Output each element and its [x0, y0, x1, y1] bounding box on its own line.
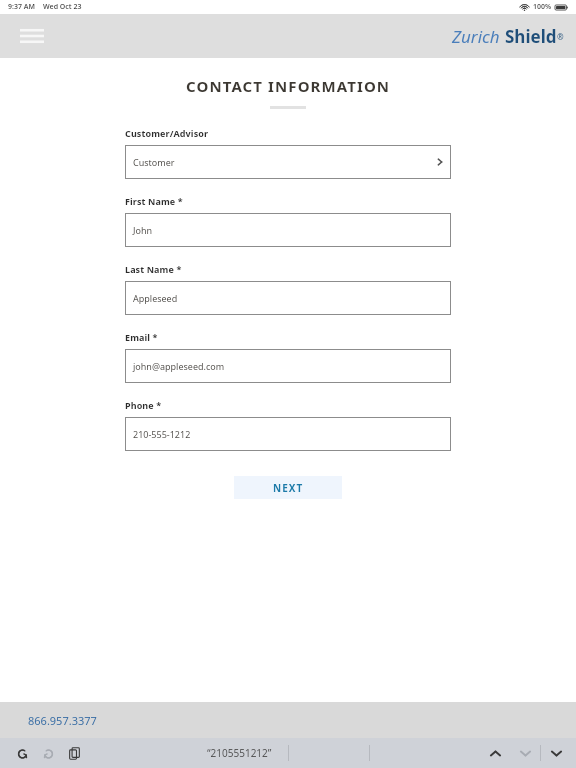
staticText: CONTACT INFORMATION: [186, 76, 391, 96]
staticText: 100%: [533, 2, 552, 12]
staticText: NEXT: [273, 481, 304, 495]
button[interactable]: Menu: [14, 18, 50, 54]
button[interactable]: Paste: [62, 741, 86, 765]
staticText: Customer/Advisor: [125, 127, 209, 139]
staticText: First Name *: [125, 195, 183, 207]
staticText: john@appleseed.com: [133, 360, 225, 372]
button[interactable]: 866.957.3377: [28, 713, 97, 728]
staticText: Last Name *: [125, 263, 182, 275]
button[interactable]: Redo: [36, 741, 60, 765]
staticText: Phone *: [125, 399, 162, 411]
button[interactable]: “2105551212”: [207, 746, 272, 760]
button[interactable]: 210-555-1212: [125, 417, 451, 451]
button[interactable]: Customer: [125, 145, 451, 179]
staticText: Zurich: [452, 25, 500, 48]
button[interactable]: Previous field: [483, 741, 507, 765]
staticText: 9:37 AM: [8, 2, 35, 12]
button[interactable]: Undo: [10, 741, 34, 765]
button[interactable]: john@appleseed.com: [125, 349, 451, 383]
staticText: John: [133, 224, 153, 236]
staticText: “2105551212”: [207, 746, 272, 760]
staticText: Wed Oct 23: [43, 2, 82, 12]
button[interactable]: Next field: [513, 741, 537, 765]
staticText: 866.957.3377: [28, 713, 97, 728]
staticText: Email *: [125, 331, 158, 343]
staticText: ®: [557, 31, 564, 42]
button[interactable]: Appleseed: [125, 281, 451, 315]
button[interactable]: NEXT: [234, 476, 342, 499]
staticText: Appleseed: [133, 292, 178, 304]
button[interactable]: John: [125, 213, 451, 247]
button[interactable]: Hide keyboard: [544, 741, 568, 765]
staticText: Customer: [133, 156, 175, 168]
staticText: 210-555-1212: [133, 428, 191, 440]
staticText: Shield: [505, 25, 557, 48]
